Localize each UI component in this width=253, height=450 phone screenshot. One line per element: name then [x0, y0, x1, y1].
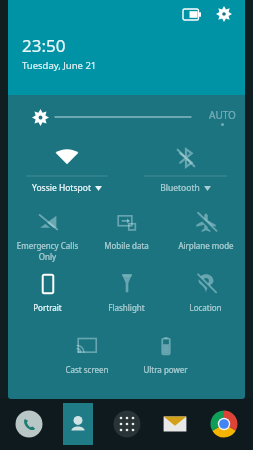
button[interactable]: Yossie Hotspot — [8, 139, 126, 201]
button[interactable]: Airplane mode — [166, 201, 245, 263]
button[interactable]: Cast screen — [47, 325, 126, 387]
button[interactable]: Mobile data — [87, 201, 166, 263]
staticText: Mobile data — [104, 240, 149, 251]
button[interactable]: Contacts — [58, 404, 98, 444]
button[interactable]: Bluetooth — [126, 139, 245, 201]
staticText: Yossie Hotspot — [32, 182, 91, 194]
button[interactable]: Ultra power — [126, 325, 205, 387]
button[interactable]: AUTO — [8, 95, 245, 139]
staticText: Bluetooth — [160, 182, 200, 194]
button[interactable]: Emergency Calls Only — [8, 201, 87, 263]
button[interactable]: Location — [166, 263, 245, 325]
button[interactable]: Gmail — [155, 404, 195, 444]
button[interactable]: Portrait — [8, 263, 87, 325]
staticText: Ultra power — [143, 364, 188, 375]
staticText: Portrait — [33, 302, 62, 313]
staticText: Flashlight — [108, 302, 145, 313]
staticText: Airplane mode — [178, 240, 234, 251]
staticText: Location — [189, 302, 222, 313]
button[interactable]: Apps — [107, 404, 147, 444]
staticText: Tuesday, June 21 — [22, 59, 97, 72]
staticText: AUTO — [209, 108, 236, 122]
staticText: 23:50 — [22, 34, 66, 57]
staticText: Emergency Calls Only — [8, 240, 87, 262]
staticText: Cast screen — [65, 364, 109, 375]
button[interactable]: Chrome — [204, 404, 244, 444]
button[interactable]: Flashlight — [87, 263, 166, 325]
button[interactable]: Phone — [9, 404, 49, 444]
button[interactable]: Settings — [213, 3, 235, 25]
